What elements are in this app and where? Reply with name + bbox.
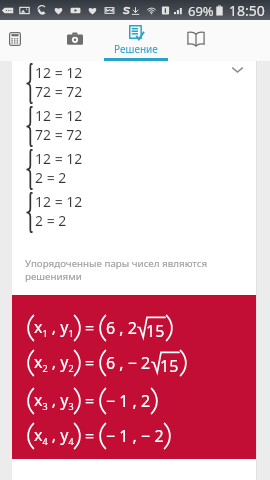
staticText: x2 , y2 <box>34 351 74 375</box>
staticText: = <box>85 317 95 339</box>
staticText: 6 , − 2 <box>106 352 151 374</box>
staticText: Решение <box>114 42 158 56</box>
button[interactable]: Collapse <box>221 61 253 79</box>
staticText: = <box>85 390 95 412</box>
staticText: 12 = 12 <box>35 106 83 125</box>
staticText: 12 = 12 <box>35 63 83 82</box>
staticText: x3 , y3 <box>34 389 74 413</box>
staticText: 72 = 72 <box>35 82 83 101</box>
staticText: 6 , 2 <box>106 317 137 339</box>
staticText: 72 = 72 <box>35 125 83 144</box>
staticText: − 1 , 2 <box>106 390 151 412</box>
staticText: 12 = 12 <box>35 192 83 211</box>
button[interactable]: Book <box>166 20 226 57</box>
staticText: Упорядоченные пары чисел являются решени… <box>25 257 208 283</box>
staticText: 69% <box>188 2 214 20</box>
button[interactable]: Camera <box>45 20 105 57</box>
button[interactable]: Решение <box>105 20 166 57</box>
staticText: 2 = 2 <box>35 168 67 187</box>
staticText: 18:50 <box>229 1 265 20</box>
button[interactable]: Calculator <box>0 20 45 57</box>
staticText: = <box>85 425 95 447</box>
staticText: x4 , y4 <box>34 424 74 448</box>
staticText: = <box>85 352 95 374</box>
staticText: 15 <box>160 355 179 377</box>
staticText: x1 , y1 <box>34 316 74 340</box>
staticText: 15 <box>146 320 165 342</box>
staticText: 2 = 2 <box>35 211 67 230</box>
staticText: 12 = 12 <box>35 149 83 168</box>
staticText: − 1 , − 2 <box>106 425 164 447</box>
